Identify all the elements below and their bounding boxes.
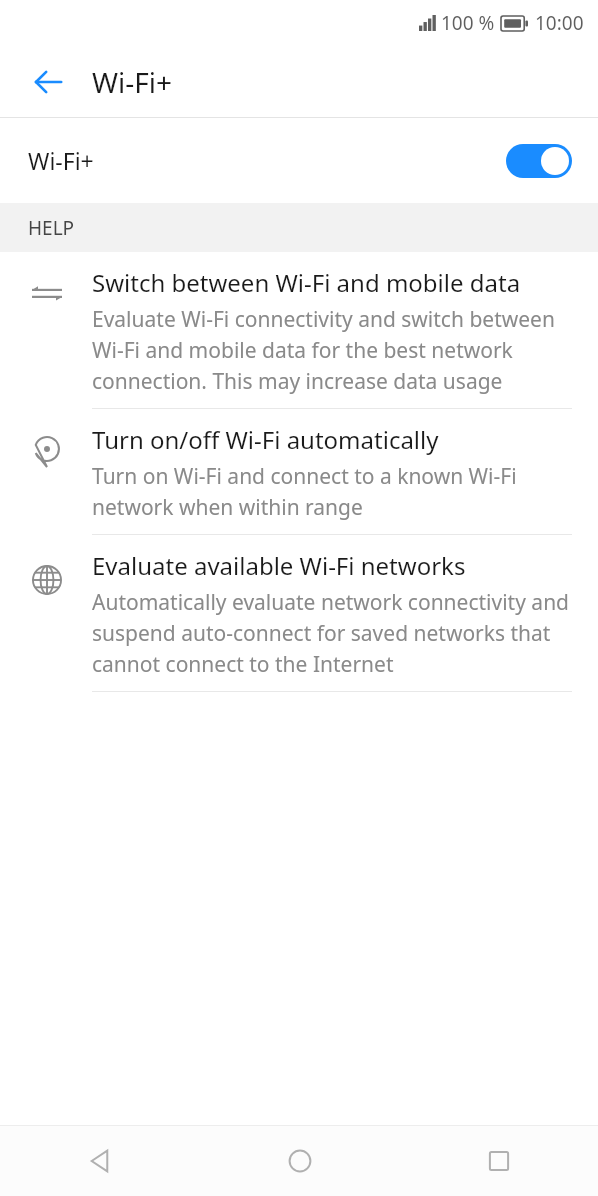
staticText: Turn on Wi-Fi and connect to a known Wi-… xyxy=(92,462,517,521)
button[interactable]: Evaluate available Wi-Fi networks xyxy=(0,535,598,692)
staticText: Switch between Wi-Fi and mobile data xyxy=(92,266,521,299)
staticText: Turn on/off Wi-Fi automatically xyxy=(92,423,439,456)
button[interactable]: Back xyxy=(22,56,74,108)
staticText: 100 % xyxy=(441,10,495,36)
staticText: Wi-Fi+ xyxy=(28,145,94,176)
staticText: Evaluate Wi-Fi connectivity and switch b… xyxy=(92,305,555,395)
button[interactable]: Wi-Fi+ toggle, on xyxy=(506,144,572,178)
staticText: Evaluate available Wi-Fi networks xyxy=(92,549,466,582)
button[interactable]: Home xyxy=(200,1126,399,1196)
staticText: HELP xyxy=(28,215,75,241)
button[interactable]: Switch between Wi-Fi and mobile data xyxy=(0,252,598,409)
staticText: 10:00 xyxy=(535,10,584,36)
staticText: Automatically evaluate network connectiv… xyxy=(92,588,570,678)
button[interactable]: Turn on/off Wi-Fi automatically xyxy=(0,409,598,535)
button[interactable]: Wi-Fi+ xyxy=(0,118,598,203)
button[interactable]: Recent apps xyxy=(399,1126,598,1196)
button[interactable]: Back xyxy=(0,1126,200,1196)
staticText: Wi-Fi+ xyxy=(92,63,173,101)
